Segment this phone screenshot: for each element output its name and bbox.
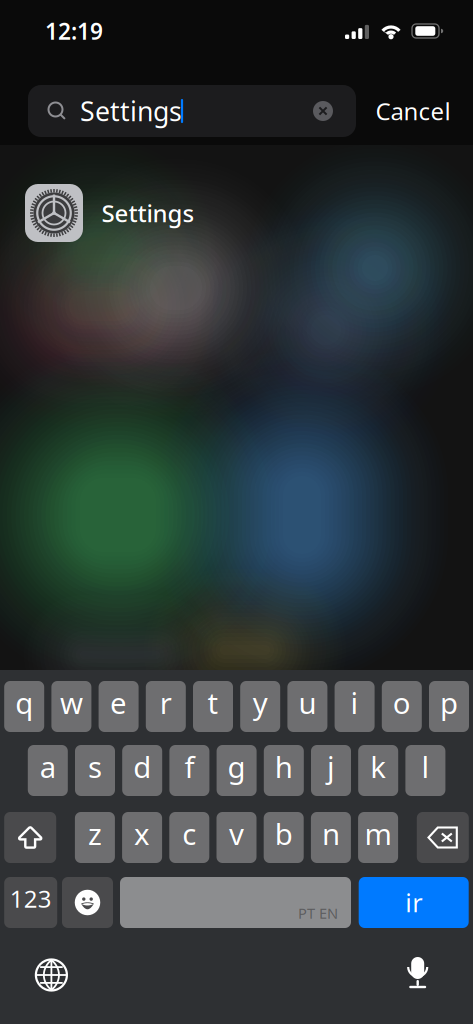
staticText: l [421, 747, 429, 786]
button[interactable]: g [217, 745, 257, 796]
button[interactable]: ir [359, 877, 469, 928]
button[interactable]: x [122, 812, 162, 863]
button[interactable]: Shift [4, 812, 56, 863]
staticText: y [253, 683, 268, 722]
staticText: a [40, 747, 56, 786]
staticText: w [60, 683, 83, 722]
button[interactable]: Settings [0, 184, 473, 242]
staticText: e [110, 683, 127, 722]
button[interactable]: Delete [417, 812, 469, 863]
button[interactable]: m [358, 812, 398, 863]
button[interactable]: y [240, 681, 280, 732]
staticText: u [298, 683, 316, 722]
staticText: k [370, 747, 386, 786]
button[interactable]: i [335, 681, 375, 732]
button[interactable]: z [75, 812, 115, 863]
staticText: Settings [101, 197, 194, 229]
staticText: i [351, 683, 359, 722]
button[interactable]: j [311, 745, 351, 796]
staticText: z [88, 814, 102, 853]
staticText: 123 [10, 883, 52, 914]
staticText: ir [405, 886, 422, 919]
button[interactable]: f [169, 745, 209, 796]
button[interactable]: d [122, 745, 162, 796]
button[interactable]: e [99, 681, 139, 732]
staticText: 12:19 [45, 16, 103, 46]
button[interactable]: p [429, 681, 469, 732]
staticText: s [88, 747, 102, 786]
button[interactable]: o [382, 681, 422, 732]
button[interactable]: Cancel [358, 85, 468, 137]
staticText: t [207, 683, 218, 722]
button[interactable]: h [264, 745, 304, 796]
staticText: m [365, 814, 392, 853]
button[interactable]: Emoji [62, 877, 113, 928]
button[interactable]: b [264, 812, 304, 863]
button[interactable]: Next keyboard [23, 952, 79, 998]
staticText: p [440, 683, 458, 722]
staticText: c [182, 814, 196, 853]
staticText: g [228, 747, 246, 786]
button[interactable]: t [193, 681, 233, 732]
button[interactable]: c [169, 812, 209, 863]
staticText: v [229, 814, 244, 853]
button[interactable]: n [311, 812, 351, 863]
staticText: r [160, 683, 172, 722]
staticText: Settings [80, 93, 182, 129]
button[interactable]: l [405, 745, 445, 796]
button[interactable]: r [146, 681, 186, 732]
button[interactable]: s [75, 745, 115, 796]
button[interactable]: w [51, 681, 91, 732]
button[interactable]: 123 [4, 877, 57, 928]
staticText: x [134, 814, 150, 853]
staticText: o [393, 683, 411, 722]
staticText: f [184, 747, 194, 786]
button[interactable]: u [287, 681, 327, 732]
button[interactable]: k [358, 745, 398, 796]
staticText: n [322, 814, 340, 853]
button[interactable]: q [4, 681, 44, 732]
button[interactable]: Space [120, 877, 351, 928]
staticText: h [275, 747, 293, 786]
staticText: j [327, 747, 335, 786]
button[interactable]: v [216, 812, 256, 863]
staticText: d [133, 747, 151, 786]
staticText: q [15, 683, 33, 722]
button[interactable]: Dictate [405, 956, 439, 992]
button[interactable]: Clear text [301, 85, 345, 137]
staticText: PT EN [298, 903, 338, 923]
staticText: b [275, 814, 293, 853]
button[interactable]: a [28, 745, 68, 796]
staticText: Cancel [375, 95, 450, 127]
